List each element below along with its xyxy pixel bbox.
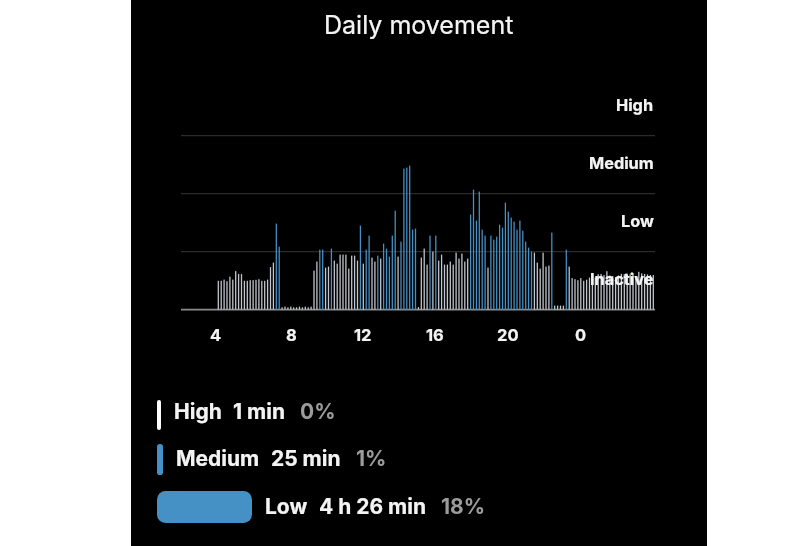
button[interactable]: Low [157, 491, 497, 523]
staticText: 1 min [233, 399, 285, 424]
staticText: 20 [497, 325, 519, 345]
staticText: 16 [426, 325, 444, 345]
staticText: Medium [589, 153, 654, 173]
button[interactable]: Medium [157, 444, 497, 475]
staticText: 0 [575, 325, 587, 345]
staticText: Low [621, 211, 654, 231]
staticText: 18% [441, 494, 486, 519]
staticText: Daily movement [324, 10, 514, 40]
staticText: High [174, 399, 222, 424]
staticText: 0% [300, 399, 336, 424]
staticText: 12 [354, 325, 372, 345]
staticText: 8 [286, 325, 297, 345]
staticText: 25 min [271, 446, 341, 471]
staticText: High [616, 95, 654, 115]
staticText: Inactive [590, 269, 654, 289]
button[interactable]: High [157, 400, 497, 430]
staticText: Low [265, 494, 308, 519]
staticText: 4 [210, 325, 222, 345]
staticText: 4 h 26 min [319, 494, 426, 519]
staticText: Medium [176, 446, 260, 471]
staticText: 1% [356, 446, 387, 471]
